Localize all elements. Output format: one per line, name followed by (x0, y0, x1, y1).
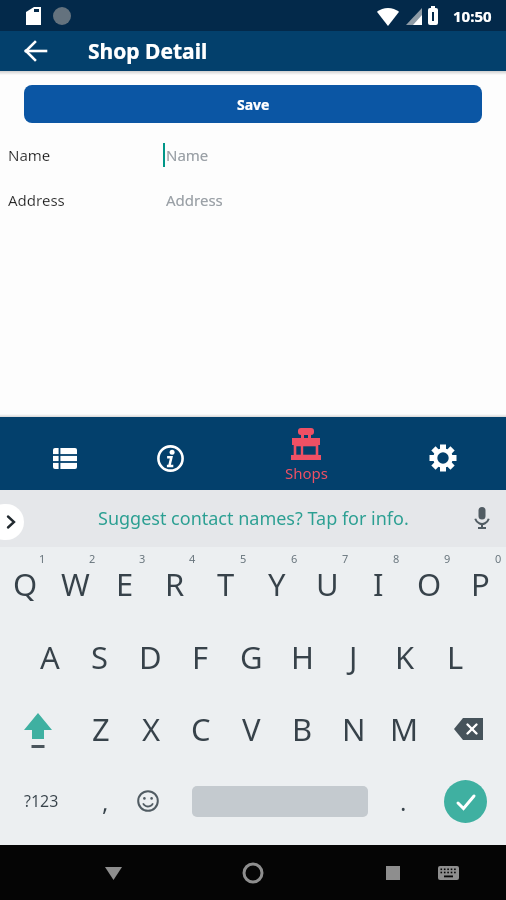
staticText: U (316, 563, 339, 605)
staticText: G (240, 636, 263, 678)
button[interactable] (138, 426, 202, 490)
button[interactable]: Z (76, 693, 126, 765)
staticText: C (191, 708, 211, 750)
button[interactable] (0, 504, 24, 540)
button[interactable]: Suggest contact names? Tap for info. (98, 506, 409, 531)
button[interactable]: S (75, 621, 125, 693)
button[interactable]: Shops (266, 419, 346, 492)
button[interactable]: C (176, 693, 226, 765)
button[interactable]: J (328, 621, 379, 693)
staticText: J (349, 636, 358, 678)
button[interactable]: L (430, 621, 481, 693)
button[interactable]: F (175, 621, 226, 693)
button[interactable] (0, 693, 76, 765)
button[interactable]: P (455, 547, 506, 621)
button[interactable] (18, 33, 54, 69)
staticText: H (291, 636, 314, 678)
staticText: . (400, 785, 407, 818)
button[interactable]: G (226, 621, 277, 693)
staticText: 3 (139, 551, 146, 566)
button[interactable] (430, 693, 506, 765)
staticText: V (242, 708, 261, 750)
button[interactable]: K (379, 621, 430, 693)
button[interactable]: E (100, 547, 150, 621)
staticText: Address (8, 190, 65, 210)
staticText: I (373, 563, 384, 605)
staticText: F (192, 636, 209, 678)
button[interactable] (90, 850, 136, 896)
button[interactable]: Save (24, 85, 482, 123)
staticText: Y (268, 563, 286, 605)
staticText: 7 (342, 551, 349, 566)
staticText: M (390, 708, 419, 750)
staticText: Shop Detail (88, 37, 208, 66)
staticText: 4 (189, 551, 196, 566)
button[interactable]: T (200, 547, 251, 621)
button[interactable]: W (50, 547, 100, 621)
button[interactable]: A (25, 621, 75, 693)
button[interactable]: U (302, 547, 353, 621)
staticText: Name (8, 145, 51, 165)
button[interactable] (230, 850, 276, 896)
staticText: D (139, 636, 162, 678)
button[interactable]: V (226, 693, 277, 765)
button[interactable]: Q (0, 547, 50, 621)
button[interactable]: Name (163, 142, 506, 168)
staticText: Z (92, 708, 110, 750)
button[interactable]: N (328, 693, 379, 765)
staticText: 5 (240, 551, 247, 566)
button[interactable]: D (125, 621, 175, 693)
button[interactable]: H (277, 621, 328, 693)
button[interactable]: X (126, 693, 176, 765)
staticText: Name (166, 145, 209, 165)
staticText: W (61, 563, 90, 605)
button[interactable]: Address (163, 187, 506, 213)
button[interactable] (444, 780, 487, 823)
staticText: T (217, 563, 235, 605)
staticText: S (91, 636, 109, 678)
staticText: 9 (444, 551, 451, 566)
button[interactable] (128, 771, 168, 831)
button[interactable]: O (404, 547, 455, 621)
button[interactable]: ?123 (10, 771, 72, 831)
staticText: E (116, 563, 134, 605)
button[interactable]: B (277, 693, 328, 765)
button[interactable]: I (353, 547, 404, 621)
staticText: A (40, 636, 60, 678)
button[interactable] (33, 426, 97, 490)
button[interactable]: M (379, 693, 430, 765)
staticText: R (165, 563, 185, 605)
staticText: N (342, 708, 366, 750)
staticText: B (292, 708, 313, 750)
staticText: K (395, 636, 415, 678)
staticText: 10:50 (453, 6, 492, 26)
staticText: , (102, 785, 109, 818)
staticText: 2 (89, 551, 96, 566)
staticText: Address (166, 190, 223, 210)
staticText: Save (237, 95, 270, 114)
button[interactable]: . (385, 771, 421, 831)
button[interactable] (428, 853, 468, 893)
staticText: L (447, 636, 464, 678)
staticText: X (142, 708, 161, 750)
staticText: O (417, 563, 442, 605)
button[interactable]: Y (251, 547, 302, 621)
button[interactable] (411, 426, 475, 490)
staticText: ?123 (24, 790, 59, 812)
staticText: P (471, 563, 490, 605)
button[interactable] (370, 850, 416, 896)
button[interactable]: , (86, 771, 124, 831)
staticText: Shops (285, 463, 328, 483)
button[interactable]: R (150, 547, 200, 621)
staticText: 6 (291, 551, 298, 566)
staticText: 8 (393, 551, 400, 566)
staticText: Q (13, 563, 38, 605)
staticText: 1 (39, 551, 46, 566)
staticText: 0 (495, 551, 502, 566)
